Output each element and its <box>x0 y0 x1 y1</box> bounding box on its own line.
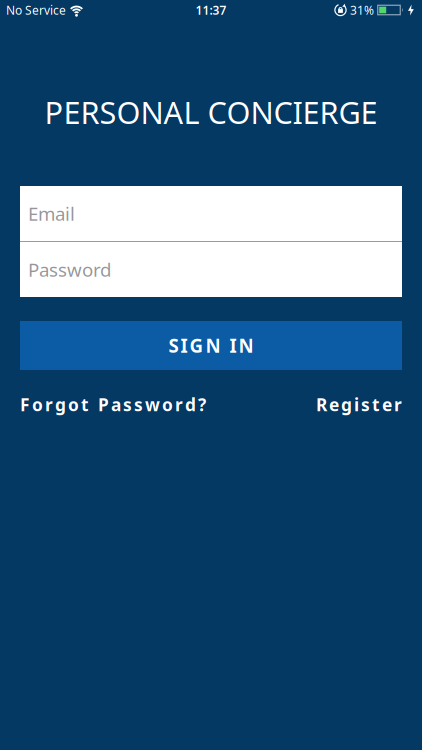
staticText: S I G N I N <box>168 333 253 358</box>
button[interactable]: S I G N I N <box>20 321 402 370</box>
button[interactable]: Password <box>20 242 402 297</box>
staticText: F o r g o t P a s s w o r d ? <box>20 393 206 416</box>
staticText: Email <box>28 201 75 226</box>
staticText: 31% <box>350 2 374 18</box>
button[interactable]: F o r g o t P a s s w o r d ? <box>20 393 206 416</box>
staticText: Password <box>28 257 111 282</box>
button[interactable]: R e g i s t e r <box>316 393 402 416</box>
staticText: R e g i s t e r <box>316 393 402 416</box>
staticText: No Service <box>6 2 66 18</box>
staticText: 11:37 <box>195 2 226 18</box>
button[interactable]: Email <box>20 186 402 241</box>
staticText: PERSONAL CONCIERGE <box>44 92 377 132</box>
